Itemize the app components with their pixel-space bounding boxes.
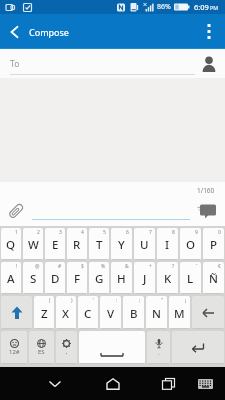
staticText: 5 <box>103 229 106 236</box>
button[interactable] <box>172 331 224 364</box>
staticText: : <box>116 297 118 304</box>
staticText: B <box>130 306 138 322</box>
staticText: € <box>218 263 221 270</box>
staticText: U <box>140 237 149 253</box>
staticText: ' <box>93 297 95 304</box>
staticText: Y <box>118 237 125 253</box>
staticText: H <box>117 271 126 287</box>
staticText: Ñ <box>209 271 218 287</box>
button[interactable]: # <box>45 262 65 294</box>
staticText: E <box>52 237 59 253</box>
button[interactable]: 4 <box>67 228 87 260</box>
button[interactable]: 9 <box>180 228 201 260</box>
button[interactable]: : <box>100 296 121 329</box>
staticText: I <box>165 237 170 253</box>
button[interactable]: , <box>56 331 77 364</box>
button[interactable] <box>192 296 224 329</box>
staticText: . <box>158 349 160 357</box>
button[interactable]: + <box>134 262 155 294</box>
staticText: 12# <box>9 348 20 356</box>
button[interactable] <box>193 372 217 396</box>
staticText: Compose <box>29 26 69 38</box>
staticText: 6 <box>126 229 129 236</box>
staticText: ES <box>38 348 45 356</box>
staticText: ! <box>16 263 18 270</box>
staticText: 7 <box>149 229 152 236</box>
staticText: 3 <box>59 229 62 236</box>
staticText: 9 <box>195 229 198 236</box>
staticText: 1 <box>15 229 18 236</box>
staticText: 2 <box>37 229 40 236</box>
button[interactable]: ES <box>29 331 54 364</box>
staticText: J <box>143 271 147 287</box>
button[interactable]: ! <box>1 262 21 294</box>
button[interactable]: ? <box>157 262 178 294</box>
staticText: ´ <box>196 263 198 270</box>
button[interactable]: 8 <box>157 228 178 260</box>
button[interactable]: & <box>111 262 132 294</box>
staticText: ( <box>49 297 51 304</box>
staticText: F <box>74 271 81 287</box>
button[interactable] <box>5 200 27 222</box>
staticText: M <box>174 306 185 322</box>
staticText: 0 <box>218 229 221 236</box>
button[interactable] <box>1 296 32 329</box>
button[interactable]: 7 <box>134 228 155 260</box>
staticText: $ <box>81 263 84 270</box>
staticText: " <box>161 297 164 304</box>
staticText: 6:09 <box>194 2 209 12</box>
button[interactable]: 6 <box>111 228 132 260</box>
staticText: ¡ <box>185 297 187 304</box>
staticText: ? <box>172 263 175 270</box>
button[interactable]: ) <box>56 296 76 329</box>
button[interactable]: ' <box>78 296 98 329</box>
button[interactable] <box>5 23 23 41</box>
staticText: 8 <box>172 229 175 236</box>
button[interactable] <box>155 371 181 397</box>
staticText: X <box>62 306 70 322</box>
staticText: R <box>73 237 81 253</box>
button[interactable]: 3 <box>45 228 65 260</box>
staticText: K <box>164 271 172 287</box>
staticText: A <box>7 271 15 287</box>
button[interactable]: 12# <box>1 331 27 364</box>
staticText: S <box>30 271 37 287</box>
button[interactable] <box>199 14 219 49</box>
button[interactable]: . <box>147 331 170 364</box>
button[interactable]: $ <box>67 262 87 294</box>
button[interactable] <box>79 331 145 364</box>
button[interactable] <box>42 371 68 397</box>
staticText: G <box>95 271 104 287</box>
button[interactable] <box>100 371 126 397</box>
button[interactable] <box>196 202 217 220</box>
staticText: @ <box>35 263 40 270</box>
button[interactable]: 5 <box>89 228 109 260</box>
staticText: L <box>187 271 194 287</box>
staticText: + <box>149 263 152 270</box>
button[interactable]: 0 <box>203 228 224 260</box>
button[interactable]: 1 <box>1 228 21 260</box>
staticText: Q <box>6 237 16 253</box>
staticText: O <box>186 237 196 253</box>
staticText: % <box>101 263 106 270</box>
button[interactable]: ¡ <box>169 296 190 329</box>
button[interactable]: " <box>146 296 167 329</box>
staticText: 1/160 <box>197 186 215 195</box>
staticText: D <box>51 271 60 287</box>
staticText: ) <box>71 297 73 304</box>
staticText: , <box>66 348 68 356</box>
button[interactable]: % <box>89 262 109 294</box>
staticText: P <box>210 237 218 253</box>
button[interactable]: ( <box>34 296 54 329</box>
button[interactable]: € <box>203 262 224 294</box>
staticText: & <box>125 263 129 270</box>
staticText: # <box>58 263 62 270</box>
button[interactable]: ; <box>123 296 144 329</box>
button[interactable]: 2 <box>23 228 43 260</box>
button[interactable]: To <box>0 49 225 78</box>
button[interactable]: ´ <box>180 262 201 294</box>
button[interactable]: @ <box>23 262 43 294</box>
staticText: Z <box>41 306 48 322</box>
staticText: T <box>96 237 103 253</box>
staticText: 4 <box>81 229 84 236</box>
